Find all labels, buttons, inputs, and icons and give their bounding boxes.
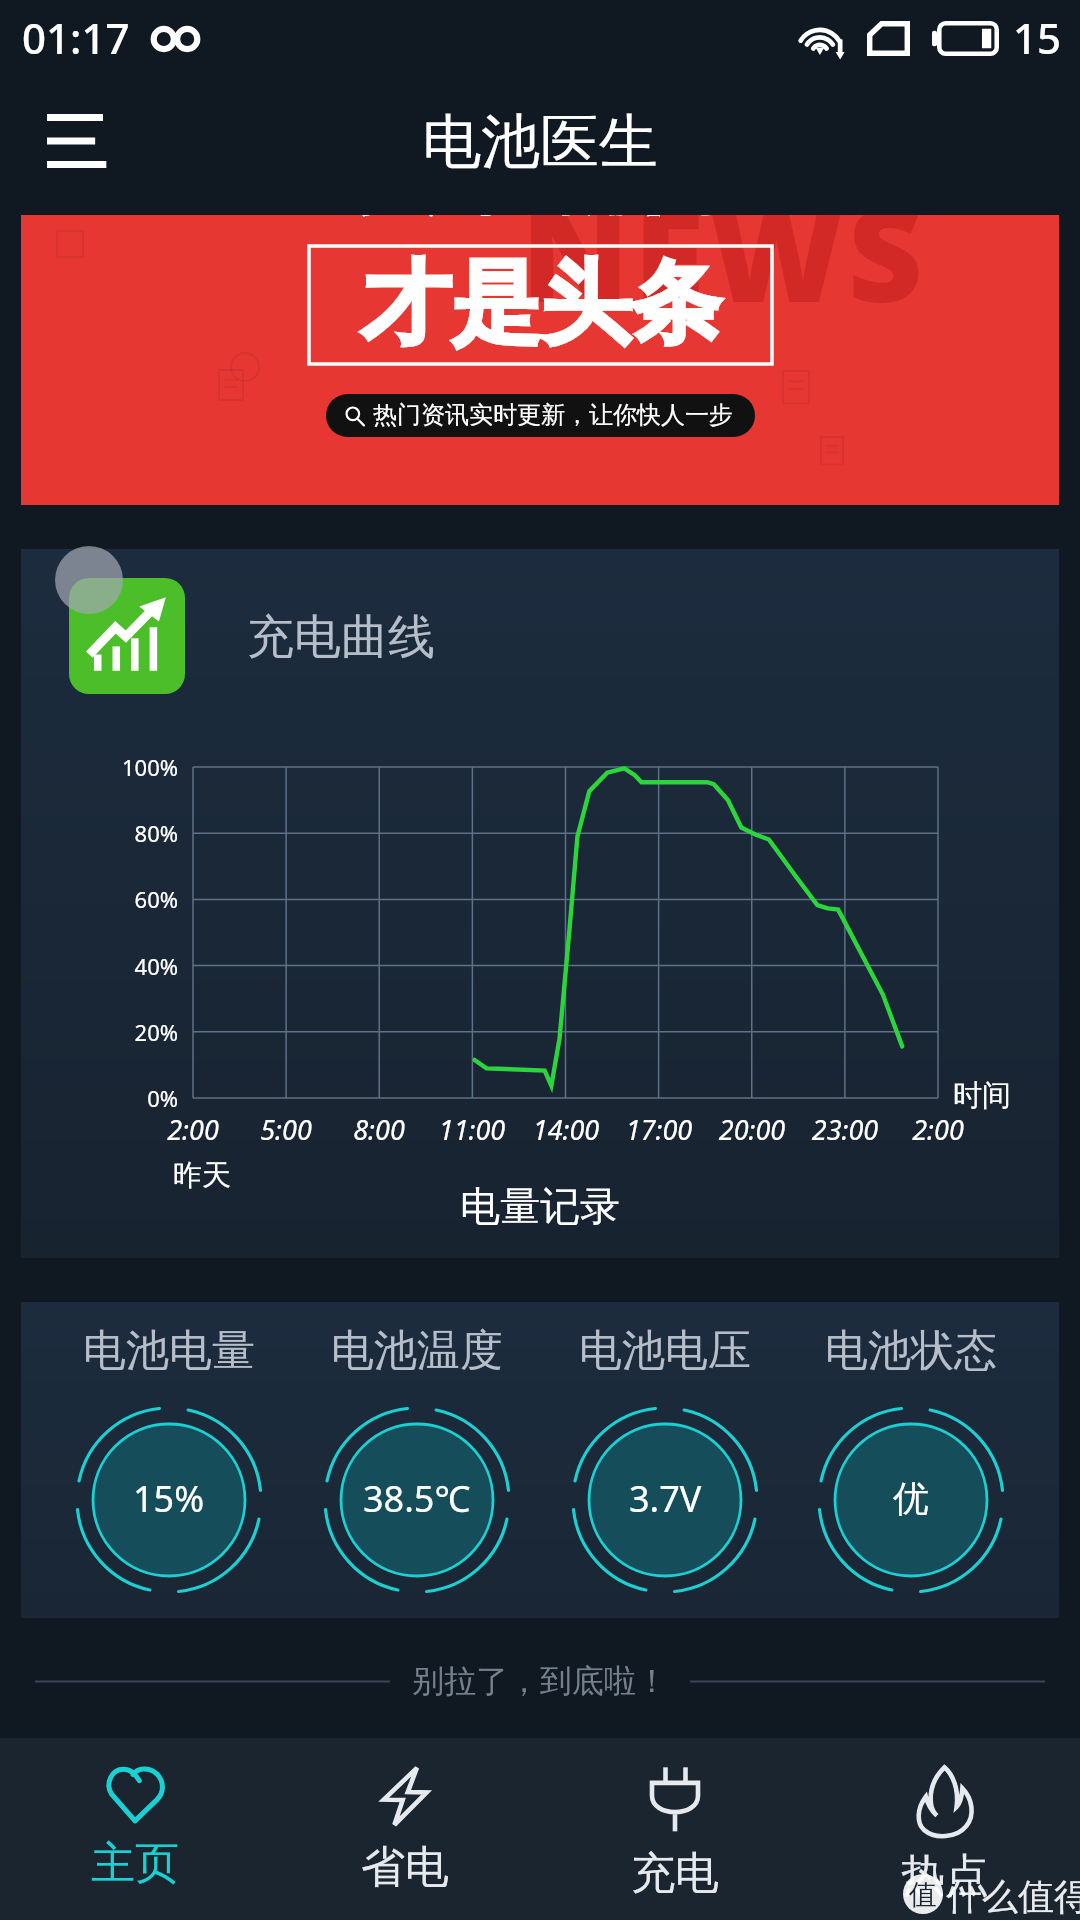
staticText: 14:00 xyxy=(506,1111,626,1148)
staticText: 2:00 xyxy=(133,1111,253,1148)
button[interactable]: 充电 xyxy=(540,1738,810,1920)
staticText: NEWS xyxy=(521,215,927,340)
button[interactable]: 省电 xyxy=(270,1738,540,1920)
staticText: 17:00 xyxy=(599,1111,719,1148)
button[interactable]: 充电曲线 xyxy=(21,549,1059,1258)
button[interactable]: 热点 xyxy=(810,1738,1080,1920)
staticText: 电池电量 xyxy=(59,1324,279,1378)
staticText: 才是头条 xyxy=(361,247,721,360)
staticText: 100% xyxy=(58,752,178,782)
button[interactable]: 主页 xyxy=(0,1738,270,1920)
staticText: 电池医生 xyxy=(422,105,658,179)
button[interactable]: 电池状态 xyxy=(801,1310,1021,1610)
staticText: 充电 xyxy=(631,1846,719,1901)
staticText: 15% xyxy=(133,1474,205,1523)
staticText: 11:00 xyxy=(412,1111,532,1148)
staticText: 别拉了，到底啦！ xyxy=(412,1661,668,1701)
staticText: 2:00 xyxy=(878,1111,998,1148)
staticText: 3.7V xyxy=(629,1474,702,1523)
staticText: 电池温度 xyxy=(307,1324,527,1378)
staticText: 时间 xyxy=(953,1077,1011,1114)
staticText: 15 xyxy=(1013,9,1062,66)
staticText: 优 xyxy=(893,1476,929,1521)
staticText: 充电曲线 xyxy=(247,608,435,667)
staticText: 主页 xyxy=(91,1836,179,1891)
staticText: 5:00 xyxy=(226,1111,346,1148)
button[interactable]: 电池电量 xyxy=(59,1310,279,1610)
staticText: 上头条新闻王 xyxy=(252,215,828,228)
staticText: 38.5℃ xyxy=(363,1474,471,1523)
staticText: 省电 xyxy=(361,1840,449,1895)
button[interactable]: Menu xyxy=(23,89,127,193)
staticText: 电池电压 xyxy=(555,1324,775,1378)
staticText: 什么值得买 xyxy=(946,1874,1080,1919)
button[interactable]: NEWS xyxy=(21,215,1059,505)
staticText: 8:00 xyxy=(319,1111,439,1148)
button[interactable]: 电池电压 xyxy=(555,1310,775,1610)
staticText: 0% xyxy=(58,1083,178,1113)
staticText: 01:17 xyxy=(22,9,130,66)
staticText: 值 xyxy=(909,1877,937,1912)
staticText: 热点 xyxy=(901,1848,989,1903)
staticText: 40% xyxy=(58,951,178,981)
staticText: 昨天 xyxy=(173,1157,231,1194)
staticText: 热门资讯实时更新，让你快人一步 xyxy=(373,400,733,430)
staticText: 电量记录 xyxy=(460,1181,620,1231)
staticText: 电池状态 xyxy=(801,1324,1021,1378)
staticText: 80% xyxy=(58,818,178,848)
staticText: 23:00 xyxy=(785,1111,905,1148)
staticText: 60% xyxy=(58,884,178,914)
button[interactable]: 电池温度 xyxy=(307,1310,527,1610)
staticText: 20:00 xyxy=(692,1111,812,1148)
staticText: 20% xyxy=(58,1017,178,1047)
